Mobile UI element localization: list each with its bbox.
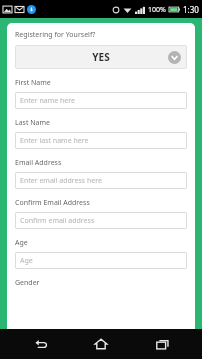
staticText: Age bbox=[15, 238, 28, 248]
button[interactable]: Back bbox=[21, 329, 61, 359]
staticText: Enter last name here bbox=[20, 136, 89, 146]
button[interactable]: YES bbox=[15, 45, 187, 69]
staticText: Registering for Yourself? bbox=[15, 30, 96, 40]
staticText: First Name bbox=[15, 78, 51, 88]
button[interactable]: Age bbox=[15, 252, 187, 269]
staticText: Last Name bbox=[15, 118, 51, 128]
staticText: Confirm Email Address bbox=[15, 198, 90, 208]
staticText: Gender bbox=[15, 278, 40, 288]
button[interactable]: Enter last name here bbox=[15, 132, 187, 149]
button[interactable]: Enter email address here bbox=[15, 172, 187, 189]
staticText: Enter email address here bbox=[20, 176, 102, 186]
button[interactable]: Confirm email address bbox=[15, 212, 187, 229]
staticText: Confirm email address bbox=[20, 216, 95, 226]
staticText: Enter name here bbox=[20, 96, 75, 106]
staticText: YES bbox=[92, 50, 110, 64]
button[interactable]: Enter name here bbox=[15, 92, 187, 109]
staticText: 1:30 bbox=[183, 4, 199, 15]
staticText: 100% bbox=[148, 5, 166, 15]
staticText: Email Address bbox=[15, 158, 62, 168]
button[interactable]: Recent apps bbox=[142, 329, 182, 359]
staticText: Age bbox=[20, 256, 33, 266]
button[interactable]: Home bbox=[81, 329, 121, 359]
